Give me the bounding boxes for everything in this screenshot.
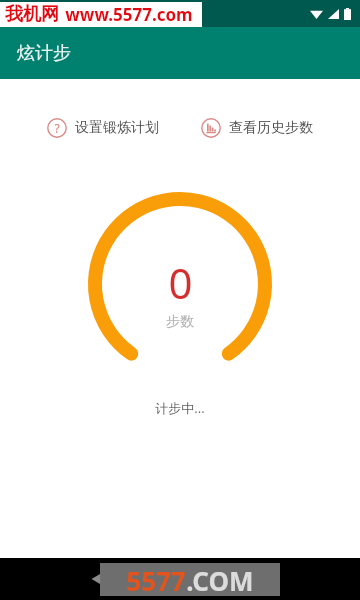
button[interactable]: Back — [86, 569, 106, 589]
staticText: 我机网 — [5, 3, 59, 26]
staticText: www.5577.com — [65, 3, 193, 26]
staticText: 查看历史步数 — [229, 119, 313, 137]
staticText: ? — [54, 120, 60, 136]
staticText: .COM — [186, 563, 254, 596]
staticText: 0 — [168, 254, 193, 311]
staticText: 步数 — [166, 313, 194, 331]
staticText: 设置锻炼计划 — [75, 119, 159, 137]
staticText: 炫计步 — [17, 42, 71, 65]
staticText: 计步中... — [155, 399, 205, 417]
staticText: 5577 — [126, 563, 186, 596]
button[interactable]: 查看历史步数 — [199, 114, 315, 142]
button[interactable]: 设置锻炼计划 — [45, 114, 161, 142]
